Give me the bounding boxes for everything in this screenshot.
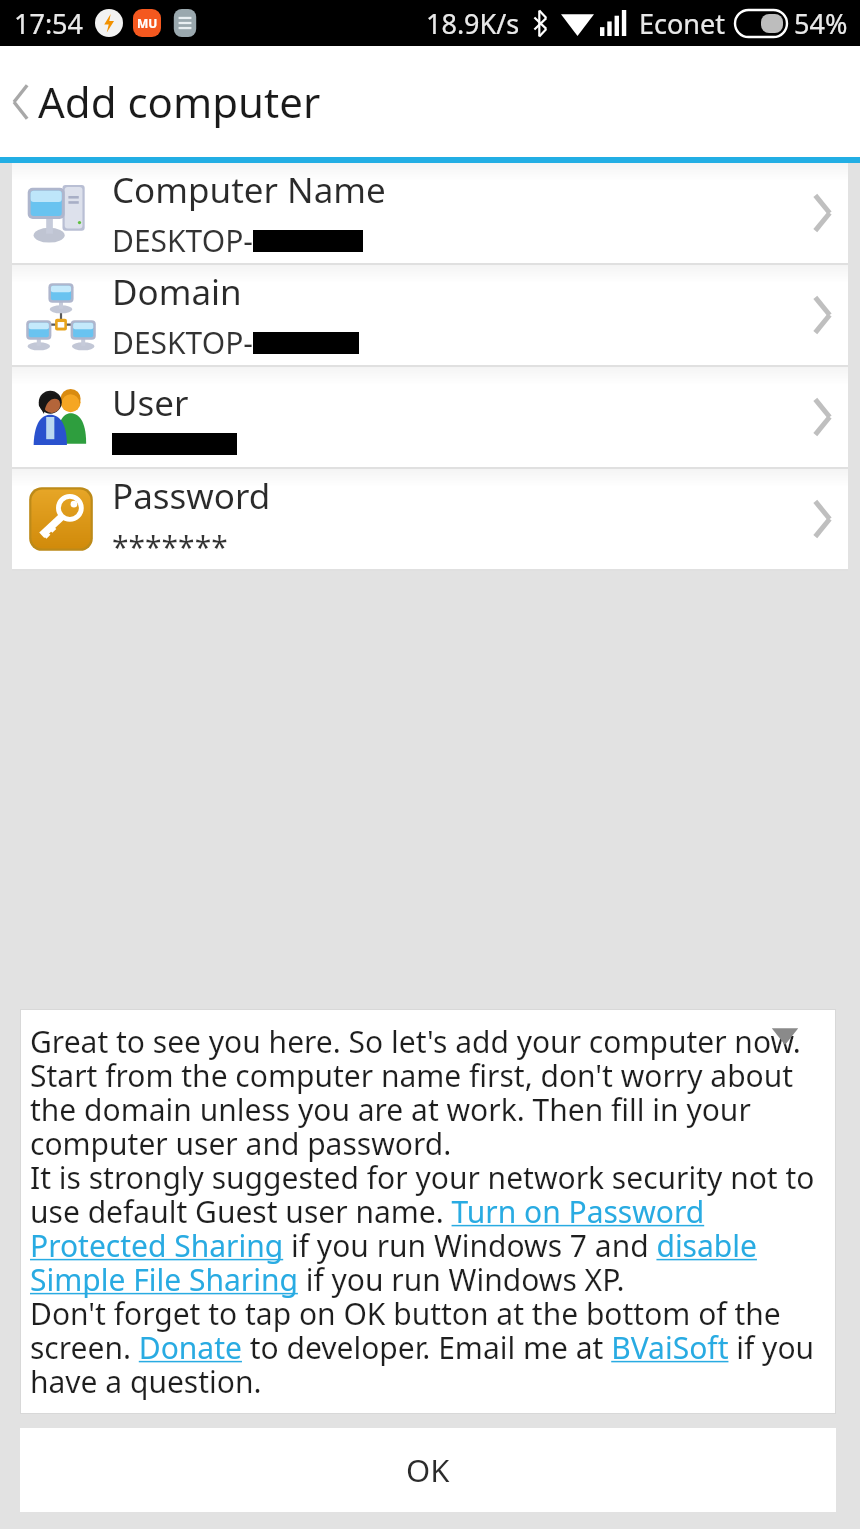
staticText: Add computer xyxy=(38,73,321,130)
staticText: MU xyxy=(137,15,158,31)
staticText: Computer Name xyxy=(112,166,386,214)
button[interactable]: Back xyxy=(10,46,321,157)
button[interactable]: Domain xyxy=(12,265,848,365)
staticText: 17:54 xyxy=(14,5,84,42)
button[interactable]: Password xyxy=(12,469,848,569)
staticText: Domain xyxy=(112,268,242,316)
staticText: OK xyxy=(406,1449,450,1491)
staticText: DESKTOP- xyxy=(112,220,253,261)
staticText: 54% xyxy=(794,5,848,42)
staticText: Password xyxy=(112,472,271,520)
staticText: DESKTOP- xyxy=(112,322,253,363)
staticText: ******* xyxy=(112,526,228,567)
button[interactable]: Great to see you here. So let's add your… xyxy=(20,1009,836,1414)
staticText: Econet xyxy=(639,5,725,42)
staticText: 18.9K/s xyxy=(426,5,520,42)
staticText: Great to see you here. So let's add your… xyxy=(30,1021,826,1402)
button[interactable]: Computer Name xyxy=(12,163,848,263)
button[interactable]: User xyxy=(12,367,848,467)
staticText: User xyxy=(112,379,189,427)
button[interactable]: Collapse help xyxy=(770,1023,800,1047)
button[interactable]: OK xyxy=(20,1428,836,1512)
